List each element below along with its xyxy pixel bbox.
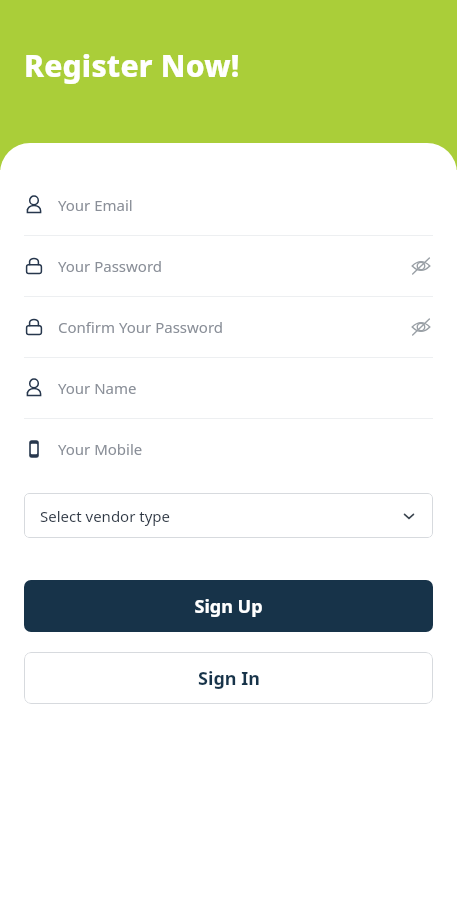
button[interactable]: Select vendor type: [24, 493, 433, 538]
button[interactable]: Your Password: [0, 236, 457, 296]
staticText: Your Email: [58, 195, 133, 215]
button[interactable]: Confirm Your Password: [0, 297, 457, 357]
button[interactable]: Show password: [409, 254, 433, 278]
button[interactable]: Your Mobile: [0, 419, 457, 479]
staticText: Your Mobile: [58, 439, 143, 459]
staticText: Sign Up: [194, 594, 263, 619]
button[interactable]: Sign In: [24, 652, 433, 704]
button[interactable]: Your Email: [0, 175, 457, 235]
staticText: Your Name: [58, 378, 137, 398]
staticText: Register Now!: [24, 45, 240, 86]
button[interactable]: Sign Up: [24, 580, 433, 632]
staticText: Select vendor type: [40, 506, 171, 526]
staticText: Sign In: [198, 666, 260, 691]
staticText: Confirm Your Password: [58, 317, 224, 337]
staticText: Your Password: [58, 256, 163, 276]
button[interactable]: Your Name: [0, 358, 457, 418]
button[interactable]: Show password: [409, 315, 433, 339]
